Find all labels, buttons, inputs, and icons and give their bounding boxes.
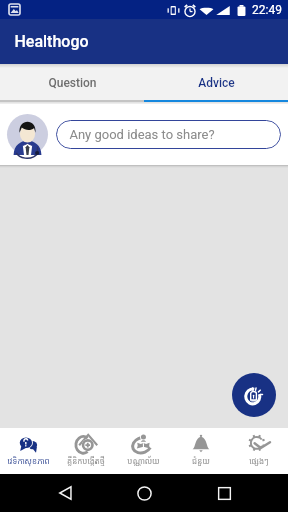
staticText: គ្លីនិកបង្កើតថ្មី (67, 455, 105, 466)
button[interactable]: Recents (209, 478, 239, 508)
button[interactable]: Home (129, 478, 159, 508)
staticText: Advice (198, 76, 235, 90)
staticText: វេទិកាសុខភាព (7, 455, 50, 466)
staticText: 22:49 (252, 3, 282, 17)
staticText: Question (48, 76, 97, 90)
staticText: Any good ideas to share? (69, 127, 215, 142)
staticText: ជំនួយ (192, 455, 210, 466)
button[interactable]: Advice (144, 64, 288, 100)
button[interactable]: វេទិកាសុខភាព (0, 428, 57, 474)
button[interactable]: គ្លីនិកបង្កើតថ្មី (57, 428, 114, 474)
staticText: បណ្ណាល័យ (127, 455, 160, 466)
staticText: ផ្សេងៗ (249, 455, 269, 466)
button[interactable]: ផ្សេងៗ (230, 428, 288, 474)
button[interactable]: Question (0, 64, 144, 100)
button[interactable]: Share an idea (232, 373, 276, 417)
button[interactable]: ជំនួយ (172, 428, 230, 474)
button[interactable]: Back (50, 478, 80, 508)
button[interactable]: បណ្ណាល័យ (114, 428, 172, 474)
staticText: Healthogo (14, 32, 89, 51)
button[interactable]: Any good ideas to share? (56, 120, 281, 149)
